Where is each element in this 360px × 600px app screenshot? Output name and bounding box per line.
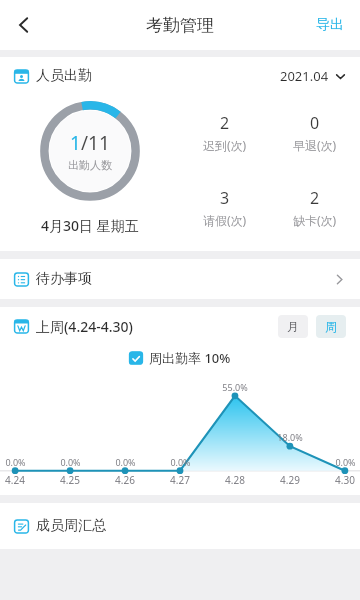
button[interactable]: 2	[270, 170, 360, 245]
staticText: 周	[325, 319, 337, 334]
staticText: 月	[287, 319, 299, 334]
staticText: 2	[220, 112, 230, 134]
staticText: 4.29	[280, 473, 300, 487]
button[interactable]: 2	[180, 95, 270, 170]
staticText: 导出	[316, 16, 344, 34]
button[interactable]: Back	[0, 1, 48, 49]
button[interactable]: 人员出勤	[0, 57, 360, 95]
staticText: 18.0%	[277, 431, 303, 443]
staticText: 待办事项	[36, 270, 92, 288]
button[interactable]: 待办事项	[0, 259, 360, 299]
staticText: 人员出勤	[36, 67, 92, 85]
staticText: 0.0%	[115, 456, 136, 468]
staticText: 缺卡(次)	[293, 212, 337, 228]
button[interactable]: 月	[278, 315, 308, 338]
staticText: 请假(次)	[203, 212, 247, 228]
staticText: 4.28	[225, 473, 245, 487]
staticText: 4.30	[335, 473, 355, 487]
staticText: /11	[81, 130, 110, 156]
staticText: 周出勤率 10%	[149, 349, 231, 367]
staticText: 迟到(次)	[203, 137, 247, 153]
staticText: 0.0%	[60, 456, 81, 468]
staticText: 0.0%	[335, 456, 356, 468]
staticText: 4月30日 星期五	[41, 216, 139, 235]
staticText: 4.27	[170, 473, 190, 487]
staticText: 1	[70, 130, 81, 156]
staticText: 4.24	[5, 473, 25, 487]
button[interactable]: 3	[180, 170, 270, 245]
button[interactable]: 0	[270, 95, 360, 170]
staticText: 考勤管理	[146, 15, 214, 36]
staticText: 出勤人数	[68, 158, 112, 172]
button[interactable]: 导出	[300, 4, 360, 46]
staticText: 0.0%	[170, 456, 191, 468]
button[interactable]: 成员周汇总	[0, 503, 360, 549]
staticText: 3	[220, 187, 230, 209]
staticText: 2021.04	[280, 67, 329, 85]
staticText: 55.0%	[222, 381, 248, 393]
staticText: 早退(次)	[293, 137, 337, 153]
staticText: 成员周汇总	[36, 517, 106, 535]
button[interactable]: 周	[316, 315, 346, 338]
staticText: 4.26	[115, 473, 135, 487]
staticText: 2	[310, 187, 320, 209]
staticText: 4.25	[60, 473, 80, 487]
staticText: 0	[310, 112, 320, 134]
staticText: 上周(4.24-4.30)	[36, 317, 133, 336]
staticText: 0.0%	[5, 456, 26, 468]
